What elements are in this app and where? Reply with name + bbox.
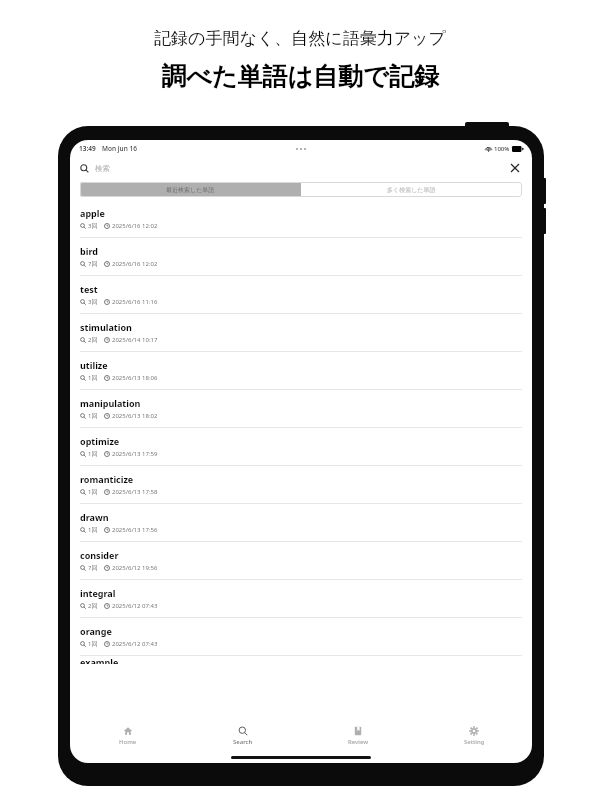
button[interactable]: manipulation — [80, 390, 522, 428]
button[interactable]: stimulation — [80, 314, 522, 352]
staticText: Setting — [464, 738, 485, 746]
staticText: consider — [80, 549, 119, 561]
staticText: 3回 — [88, 298, 98, 306]
button[interactable]: bird — [80, 238, 522, 276]
button[interactable]: consider — [80, 542, 522, 580]
staticText: 1回 — [88, 526, 98, 534]
staticText: 1回 — [88, 450, 98, 458]
button[interactable]: apple — [80, 200, 522, 238]
staticText: 2025/6/12 07:43 — [112, 640, 158, 648]
staticText: 2025/6/13 17:58 — [112, 488, 158, 496]
staticText: 100% — [494, 145, 510, 153]
staticText: 1回 — [88, 488, 98, 496]
button[interactable]: test — [80, 276, 522, 314]
staticText: 2025/6/12 07:43 — [112, 602, 158, 610]
staticText: Search — [233, 738, 253, 746]
staticText: 記録の手間なく、自然に語彙力アップ — [154, 28, 446, 49]
staticText: 2025/6/16 12:02 — [112, 260, 158, 268]
staticText: apple — [80, 207, 105, 219]
staticText: 2025/6/13 17:59 — [112, 450, 158, 458]
button[interactable]: optimize — [80, 428, 522, 466]
staticText: 7回 — [88, 260, 98, 268]
button[interactable]: 多く検索した単語 — [301, 182, 522, 197]
staticText: 1回 — [88, 412, 98, 420]
staticText: 3回 — [88, 222, 98, 230]
staticText: utilize — [80, 359, 108, 371]
staticText: 2025/6/12 19:56 — [112, 564, 158, 572]
staticText: stimulation — [80, 321, 132, 333]
staticText: romanticize — [80, 473, 134, 485]
button[interactable]: drawn — [80, 504, 522, 542]
staticText: integral — [80, 587, 116, 599]
staticText: 2025/6/16 11:16 — [112, 298, 158, 306]
staticText: manipulation — [80, 397, 141, 409]
staticText: 13:49 — [79, 144, 96, 153]
staticText: bird — [80, 245, 98, 257]
staticText: 2025/6/13 17:56 — [112, 526, 158, 534]
button[interactable]: Search — [185, 721, 300, 751]
button[interactable]: 最近検索した単語 — [80, 182, 301, 197]
button[interactable]: Setting — [416, 721, 532, 751]
staticText: Home — [119, 738, 137, 746]
button[interactable]: orange — [80, 618, 522, 656]
staticText: orange — [80, 625, 112, 637]
button[interactable]: Home — [70, 721, 185, 751]
staticText: 2025/6/13 18:06 — [112, 374, 158, 382]
staticText: example — [80, 656, 119, 664]
staticText: 最近検索した単語 — [166, 186, 215, 194]
staticText: 検索 — [95, 164, 110, 173]
staticText: 2025/6/14 10:17 — [112, 336, 158, 344]
button[interactable]: romanticize — [80, 466, 522, 504]
staticText: 7回 — [88, 564, 98, 572]
button[interactable]: Review — [300, 721, 416, 751]
staticText: drawn — [80, 511, 109, 523]
button[interactable]: Clear search — [508, 161, 522, 175]
staticText: 2025/6/16 12:02 — [112, 222, 158, 230]
staticText: 調べた単語は自動で記録 — [161, 61, 439, 92]
staticText: 多く検索した単語 — [387, 186, 436, 194]
staticText: 1回 — [88, 374, 98, 382]
staticText: 2回 — [88, 602, 98, 610]
staticText: test — [80, 283, 98, 295]
staticText: 2025/6/13 18:02 — [112, 412, 158, 420]
staticText: optimize — [80, 435, 120, 447]
button[interactable]: integral — [80, 580, 522, 618]
staticText: Mon Jun 16 — [102, 144, 137, 153]
staticText: Review — [348, 738, 369, 746]
button[interactable]: utilize — [80, 352, 522, 390]
staticText: 2回 — [88, 336, 98, 344]
staticText: 1回 — [88, 640, 98, 648]
